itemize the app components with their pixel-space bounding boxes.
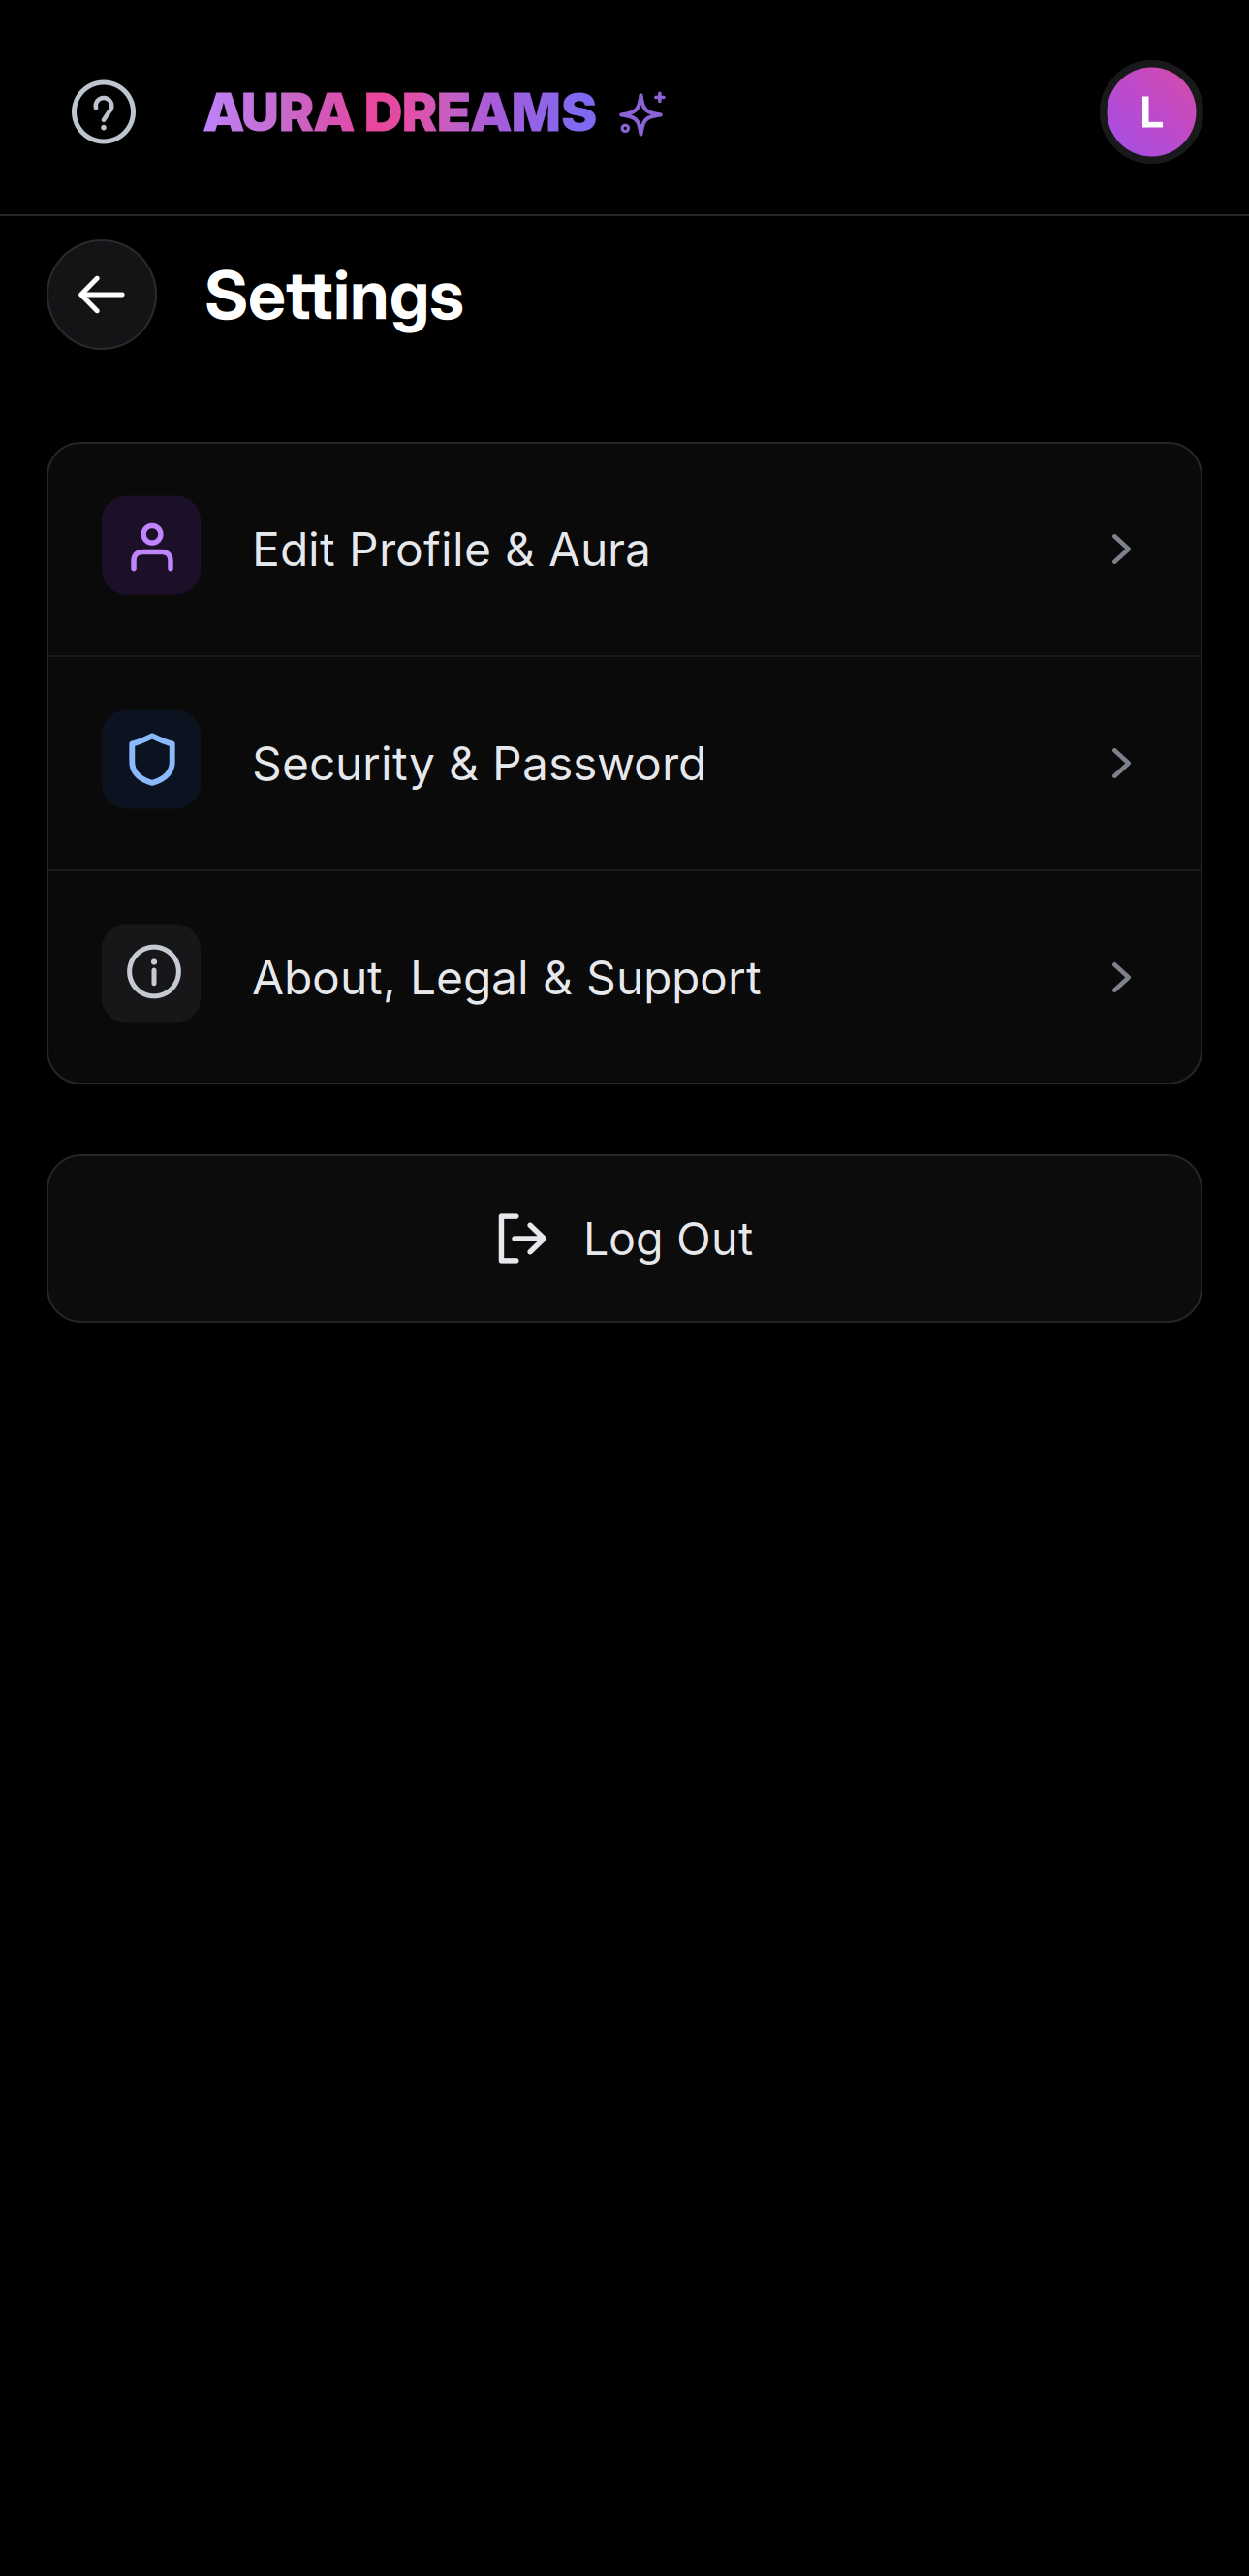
button[interactable]: Log Out <box>47 1155 1202 1322</box>
button[interactable]: About, Legal & Support <box>47 871 1202 1084</box>
staticText: Settings <box>204 254 464 335</box>
button[interactable]: Profile <box>1100 60 1203 164</box>
staticText: About, Legal & Support <box>252 949 762 1006</box>
button[interactable]: Edit Profile & Aura <box>47 443 1202 655</box>
button[interactable]: Help <box>72 80 136 144</box>
staticText: Log Out <box>583 1211 753 1266</box>
button[interactable]: Back <box>47 240 156 349</box>
staticText: L <box>1140 86 1163 138</box>
staticText: Edit Profile & Aura <box>252 521 651 577</box>
staticText: Security & Password <box>252 735 706 791</box>
button[interactable]: Security & Password <box>47 657 1202 869</box>
